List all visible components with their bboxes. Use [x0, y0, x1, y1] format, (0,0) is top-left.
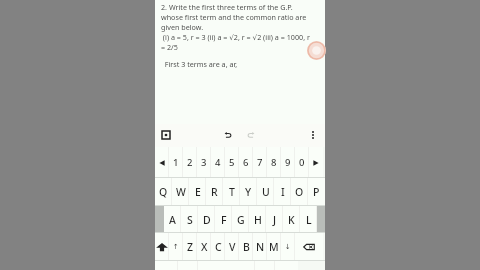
button[interactable]: 7 — [253, 147, 267, 178]
button[interactable]: 0 — [295, 147, 309, 178]
staticText: ↓ — [285, 243, 291, 251]
button[interactable]: K — [283, 206, 300, 233]
staticText: 0 — [299, 156, 305, 169]
staticText: E — [195, 185, 201, 199]
staticText: whose first term and the common ratio ar… — [161, 12, 307, 22]
staticText: B — [243, 240, 250, 254]
staticText: 2. Write the first three terms of the G.… — [161, 2, 293, 12]
button[interactable]: G — [232, 206, 249, 233]
button[interactable]: F — [215, 206, 232, 233]
button[interactable]: 2 — [183, 147, 197, 178]
button[interactable]: U — [257, 178, 274, 206]
staticText: I — [281, 185, 285, 199]
staticText: H — [254, 213, 262, 227]
button[interactable]: D — [198, 206, 215, 233]
staticText: F — [221, 213, 227, 227]
staticText: X — [201, 240, 208, 254]
staticText: 9 — [285, 156, 291, 169]
button[interactable]: X — [197, 233, 211, 261]
button[interactable]: 8 — [267, 147, 281, 178]
button[interactable]: T — [223, 178, 240, 206]
button[interactable]: P — [308, 178, 325, 206]
button[interactable]: R — [206, 178, 223, 206]
staticText: D — [203, 213, 211, 227]
staticText: S — [187, 213, 193, 227]
button[interactable]: Q — [155, 178, 172, 206]
staticText: V — [229, 240, 236, 254]
button[interactable]: W — [172, 178, 189, 206]
button[interactable]: E — [189, 178, 206, 206]
staticText: First 3 terms are a, ar, — [161, 59, 238, 69]
button[interactable]: I — [274, 178, 291, 206]
staticText: (i) a = 5, r = 3 (ii) a = √2, r = √2 (ii… — [161, 32, 310, 42]
button[interactable]: V — [225, 233, 239, 261]
staticText: C — [215, 240, 222, 254]
button[interactable]: Y — [240, 178, 257, 206]
button[interactable]: Cursor down — [281, 233, 295, 261]
button[interactable]: Backspace — [295, 233, 323, 261]
staticText: R — [211, 185, 218, 199]
button[interactable]: S — [181, 206, 198, 233]
button[interactable]: M — [267, 233, 281, 261]
staticText: Z — [187, 240, 194, 254]
staticText: 7 — [257, 156, 263, 169]
button[interactable]: Redo — [243, 127, 259, 143]
button[interactable]: H — [249, 206, 266, 233]
staticText: 5 — [229, 156, 235, 169]
button[interactable]: 1 — [169, 147, 183, 178]
staticText: M — [269, 240, 279, 254]
button[interactable]: Shift — [155, 233, 169, 261]
staticText: U — [262, 185, 270, 199]
button[interactable]: Next — [309, 147, 323, 178]
staticText: O — [295, 185, 304, 199]
button[interactable]: B — [239, 233, 253, 261]
button[interactable]: Select text — [158, 127, 174, 143]
button[interactable]: 4 — [211, 147, 225, 178]
button[interactable]: C — [211, 233, 225, 261]
button[interactable]: Cursor up — [169, 233, 183, 261]
button[interactable]: More options — [305, 127, 321, 143]
button[interactable]: Tab — [155, 206, 164, 233]
button[interactable]: Undo — [220, 127, 236, 143]
button[interactable]: J — [266, 206, 283, 233]
button[interactable]: 9 — [281, 147, 295, 178]
button[interactable]: Enter — [317, 206, 325, 233]
staticText: T — [229, 185, 235, 199]
staticText: L — [306, 213, 312, 227]
button[interactable]: O — [291, 178, 308, 206]
button[interactable]: A — [164, 206, 181, 233]
staticText: 8 — [271, 156, 277, 169]
staticText: 6 — [243, 156, 249, 169]
staticText: N — [256, 240, 265, 254]
button[interactable]: N — [253, 233, 267, 261]
staticText: 1 — [173, 156, 179, 169]
staticText: 4 — [215, 156, 221, 169]
button[interactable]: Previous — [155, 147, 169, 178]
button[interactable]: 5 — [225, 147, 239, 178]
button[interactable]: 3 — [197, 147, 211, 178]
staticText: given below. — [161, 22, 204, 32]
staticText: Y — [245, 185, 252, 199]
staticText: 2 — [187, 156, 193, 169]
button[interactable]: L — [300, 206, 317, 233]
staticText: J — [273, 213, 277, 227]
staticText: Q — [159, 185, 168, 199]
staticText: K — [288, 213, 295, 227]
staticText: 3 — [201, 156, 207, 169]
button[interactable]: 6 — [239, 147, 253, 178]
staticText: A — [169, 213, 176, 227]
staticText: W — [176, 185, 186, 199]
staticText: G — [237, 213, 245, 227]
button[interactable]: Z — [183, 233, 197, 261]
staticText: ↑ — [173, 243, 179, 251]
staticText: P — [313, 185, 320, 199]
